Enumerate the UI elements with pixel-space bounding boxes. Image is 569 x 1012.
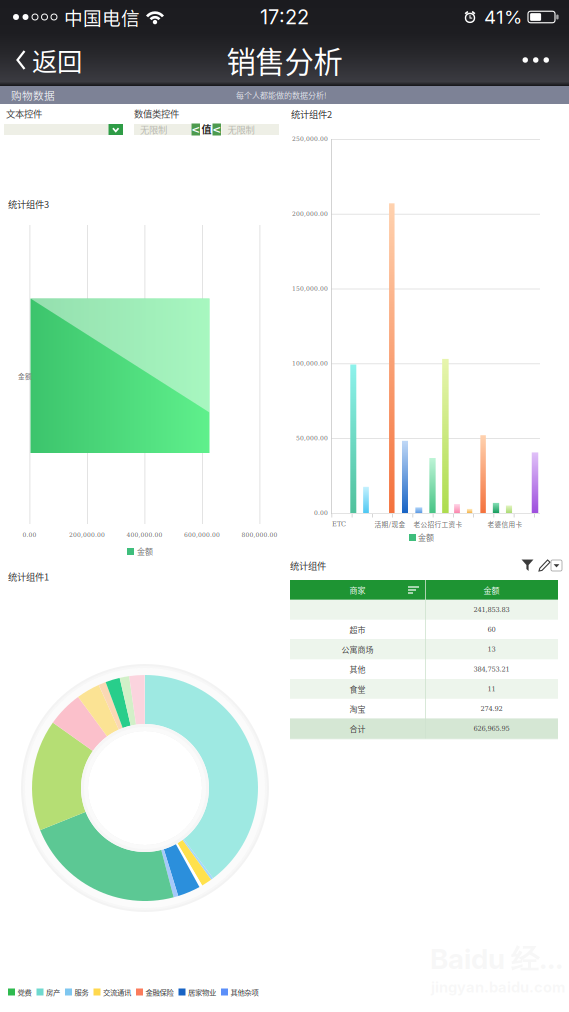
staticText: 250,000.00 xyxy=(292,135,328,142)
button[interactable]: 筛选 xyxy=(521,558,535,573)
button[interactable]: 返回 xyxy=(0,33,94,86)
staticText: 党费 xyxy=(17,987,31,997)
staticText: 服务 xyxy=(74,987,88,997)
staticText: 交流通讯 xyxy=(103,987,131,997)
staticText: 活期/现金 xyxy=(374,519,405,529)
staticText: 13 xyxy=(487,645,495,653)
staticText: 0.00 xyxy=(314,509,328,516)
staticText: 11 xyxy=(487,685,495,693)
staticText: 50,000.00 xyxy=(296,435,328,442)
staticText: 17:22 xyxy=(260,5,309,29)
staticText: 超市 xyxy=(349,624,365,635)
staticText: 800,000.00 xyxy=(241,531,277,538)
staticText: 400,000.00 xyxy=(126,531,162,538)
staticText: 金额 xyxy=(18,371,32,381)
staticText: 销售分析 xyxy=(226,39,342,81)
staticText: 统计组件1 xyxy=(8,570,49,583)
staticText: 无限制 xyxy=(227,123,254,136)
staticText: 241,853.83 xyxy=(473,606,509,614)
staticText: 274.92 xyxy=(480,705,502,713)
button[interactable]: 更多 xyxy=(506,33,569,86)
staticText: 626,965.95 xyxy=(473,725,509,732)
staticText: < xyxy=(212,123,221,136)
staticText: 41% xyxy=(484,6,522,28)
staticText: 统计组件 xyxy=(290,559,326,572)
button[interactable]: 选项 xyxy=(551,560,562,571)
staticText: 居家物业 xyxy=(188,987,216,997)
staticText: 0.00 xyxy=(22,531,36,538)
staticText: 房产 xyxy=(46,987,60,997)
staticText: 值 xyxy=(201,122,211,136)
staticText: 老婆信用卡 xyxy=(487,519,522,529)
staticText: 200,000.00 xyxy=(69,531,105,538)
staticText: 食堂 xyxy=(349,683,365,695)
staticText: 统计组件3 xyxy=(8,197,49,211)
staticText: 金融保险 xyxy=(145,987,173,997)
staticText: 600,000.00 xyxy=(184,531,220,538)
button[interactable] xyxy=(4,124,123,135)
staticText: 无限制 xyxy=(140,123,167,136)
staticText: 公寓商场 xyxy=(341,643,373,655)
staticText: 200,000.00 xyxy=(292,210,328,217)
staticText: 数值类控件 xyxy=(134,107,179,120)
staticText: 返回 xyxy=(32,42,82,78)
staticText: 60 xyxy=(487,626,495,633)
staticText: 商家 xyxy=(349,584,365,596)
staticText: 淘宝 xyxy=(349,703,365,714)
staticText: 每个人都能做的数据分析! xyxy=(236,89,327,101)
staticText: 合计 xyxy=(349,723,365,734)
staticText: 统计组件2 xyxy=(291,107,332,121)
staticText: 其他 xyxy=(349,663,365,675)
button[interactable]: 编辑 xyxy=(538,558,552,573)
staticText: 购物数据 xyxy=(11,87,55,103)
staticText: 金额 xyxy=(137,545,153,557)
staticText: ETC xyxy=(332,520,346,528)
staticText: 中国电信 xyxy=(64,3,140,30)
staticText: 文本控件 xyxy=(6,107,42,120)
staticText: Baidu 经验 xyxy=(430,942,566,977)
staticText: 金额 xyxy=(418,531,434,543)
staticText: 384,753.21 xyxy=(473,665,509,673)
staticText: < xyxy=(191,123,200,136)
staticText: 100,000.00 xyxy=(292,360,328,367)
staticText: 其他杂项 xyxy=(230,987,258,997)
staticText: 150,000.00 xyxy=(292,285,328,292)
staticText: 金额 xyxy=(483,584,499,596)
staticText: 老公招行工资卡 xyxy=(413,519,462,529)
